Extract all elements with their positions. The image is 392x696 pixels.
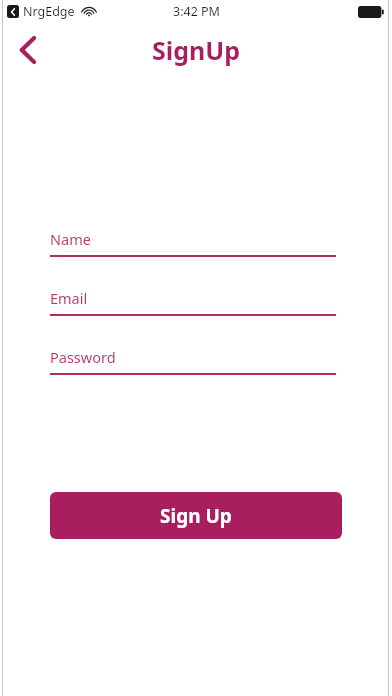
- staticText: Name: [50, 229, 91, 249]
- button[interactable]: Sign Up: [50, 492, 342, 539]
- button[interactable]: Email: [50, 288, 336, 316]
- staticText: Password: [50, 347, 116, 367]
- button[interactable]: Password: [50, 347, 336, 375]
- staticText: Email: [50, 288, 88, 308]
- button[interactable]: Name: [50, 229, 336, 257]
- staticText: 3:42 PM: [173, 3, 220, 20]
- staticText: SignUp: [152, 33, 241, 67]
- staticText: Sign Up: [160, 503, 232, 529]
- staticText: NrgEdge: [23, 3, 75, 20]
- button[interactable]: Back: [10, 33, 44, 67]
